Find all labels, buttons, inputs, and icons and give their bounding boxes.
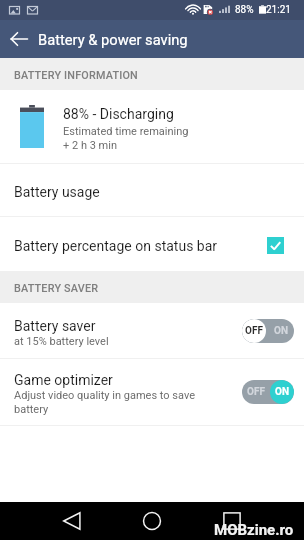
button[interactable]: Navigate up <box>0 20 38 58</box>
button[interactable]: Battery percentage on status bar <box>0 217 304 271</box>
staticText: Battery saver <box>14 318 96 334</box>
button[interactable]: Switch off <box>242 319 294 343</box>
button[interactable]: Battery usage <box>0 164 304 216</box>
staticText: BATTERY INFORMATION <box>14 69 138 82</box>
staticText: ON <box>275 386 289 398</box>
button[interactable]: Recent apps <box>212 502 252 540</box>
staticText: Battery usage <box>14 184 100 200</box>
staticText: at 15% battery level <box>14 335 196 348</box>
button[interactable]: 88% - Discharging <box>0 90 304 163</box>
button[interactable]: Back <box>52 502 92 540</box>
staticText: OFF <box>245 325 263 337</box>
staticText: 88% <box>235 4 254 16</box>
button[interactable]: Switch on <box>242 380 294 404</box>
staticText: 21:21 <box>266 4 291 16</box>
staticText: 88% - Discharging <box>63 106 174 122</box>
staticText: Game optimizer <box>14 372 113 388</box>
staticText: Estimated time remaining <box>63 125 189 138</box>
staticText: + 2 h 3 min <box>63 139 117 152</box>
staticText: OFF <box>247 386 265 398</box>
staticText: BATTERY SAVER <box>14 282 99 295</box>
button[interactable]: Home <box>132 502 172 540</box>
button[interactable]: Battery saver <box>0 303 304 358</box>
staticText: MOBzine.ro <box>214 521 294 539</box>
staticText: Adjust video quality in games to save ba… <box>14 389 196 416</box>
staticText: ON <box>274 325 288 337</box>
button[interactable]: Game optimizer <box>0 359 304 425</box>
staticText: Battery & power saving <box>38 31 188 48</box>
staticText: Battery percentage on status bar <box>14 238 267 254</box>
